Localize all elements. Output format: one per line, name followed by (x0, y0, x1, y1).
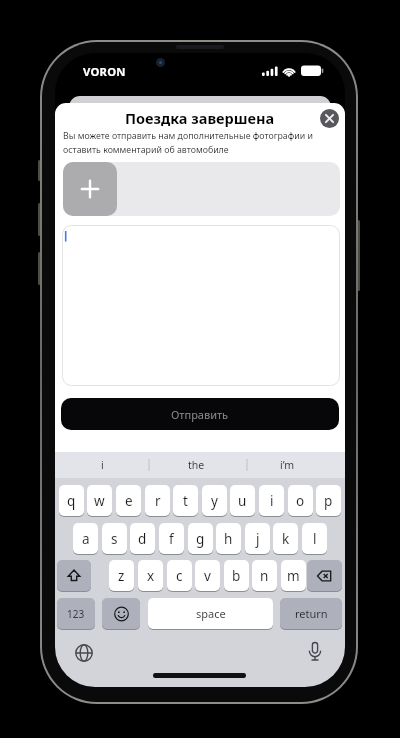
button[interactable]: i (259, 485, 284, 516)
button[interactable]: e (116, 485, 141, 516)
button[interactable]: m (281, 560, 306, 591)
staticText: c (176, 567, 183, 585)
button[interactable]: r (145, 485, 170, 516)
staticText: x (147, 567, 155, 585)
button[interactable]: d (130, 523, 155, 554)
button[interactable]: q (59, 485, 84, 516)
button[interactable]: p (316, 485, 341, 516)
staticText: i (270, 492, 274, 510)
button[interactable]: k (273, 523, 298, 554)
staticText: o (296, 492, 305, 510)
button[interactable] (62, 225, 340, 386)
staticText: q (67, 492, 76, 510)
button[interactable]: z (109, 560, 134, 591)
button[interactable]: t (173, 485, 198, 516)
button[interactable]: s (102, 523, 127, 554)
button[interactable]: u (230, 485, 255, 516)
staticText: n (260, 567, 269, 585)
button[interactable] (320, 109, 339, 128)
staticText: 123 (67, 607, 85, 621)
staticText: Отправить (171, 407, 229, 422)
button[interactable]: i (70, 453, 134, 477)
button[interactable] (57, 560, 91, 591)
button[interactable] (301, 638, 329, 666)
button[interactable]: the (164, 453, 228, 477)
staticText: h (224, 530, 233, 548)
button[interactable] (307, 560, 342, 591)
staticText: Вы можете отправить нам дополнительные ф… (63, 130, 313, 155)
button[interactable] (63, 162, 117, 216)
button[interactable]: b (224, 560, 249, 591)
button[interactable]: f (159, 523, 184, 554)
button[interactable]: space (148, 598, 273, 629)
button[interactable]: o (288, 485, 313, 516)
button[interactable]: g (188, 523, 213, 554)
button[interactable]: n (252, 560, 277, 591)
staticText: y (211, 492, 218, 510)
staticText: VORON (83, 64, 126, 79)
button[interactable] (102, 598, 140, 629)
staticText: return (295, 606, 328, 621)
button[interactable]: 123 (57, 598, 95, 629)
staticText: w (94, 492, 105, 510)
button[interactable]: h (216, 523, 241, 554)
staticText: u (238, 492, 247, 510)
staticText: Поездка завершена (125, 108, 275, 128)
button[interactable] (70, 639, 98, 667)
button[interactable]: y (202, 485, 227, 516)
staticText: b (232, 567, 241, 585)
staticText: m (287, 567, 300, 585)
staticText: k (282, 530, 290, 548)
staticText: i’m (280, 458, 295, 472)
button[interactable]: v (195, 560, 220, 591)
staticText: z (118, 567, 125, 585)
button[interactable]: w (87, 485, 112, 516)
button[interactable]: a (73, 523, 98, 554)
button[interactable]: j (245, 523, 270, 554)
staticText: p (324, 492, 333, 510)
staticText: space (196, 606, 226, 621)
button[interactable]: c (167, 560, 192, 591)
staticText: e (125, 492, 133, 510)
staticText: r (155, 492, 161, 510)
staticText: a (82, 530, 90, 548)
staticText: d (138, 530, 147, 548)
staticText: the (188, 458, 205, 472)
button[interactable]: Отправить (61, 398, 339, 430)
staticText: v (204, 567, 211, 585)
staticText: f (169, 530, 174, 548)
button[interactable]: i’m (255, 453, 319, 477)
staticText: l (313, 530, 317, 548)
staticText: j (256, 530, 260, 548)
staticText: s (111, 530, 118, 548)
staticText: i (101, 458, 104, 472)
button[interactable]: x (138, 560, 163, 591)
staticText: g (196, 530, 205, 548)
button[interactable]: return (280, 598, 342, 629)
button[interactable]: l (302, 523, 327, 554)
staticText: t (183, 492, 188, 510)
